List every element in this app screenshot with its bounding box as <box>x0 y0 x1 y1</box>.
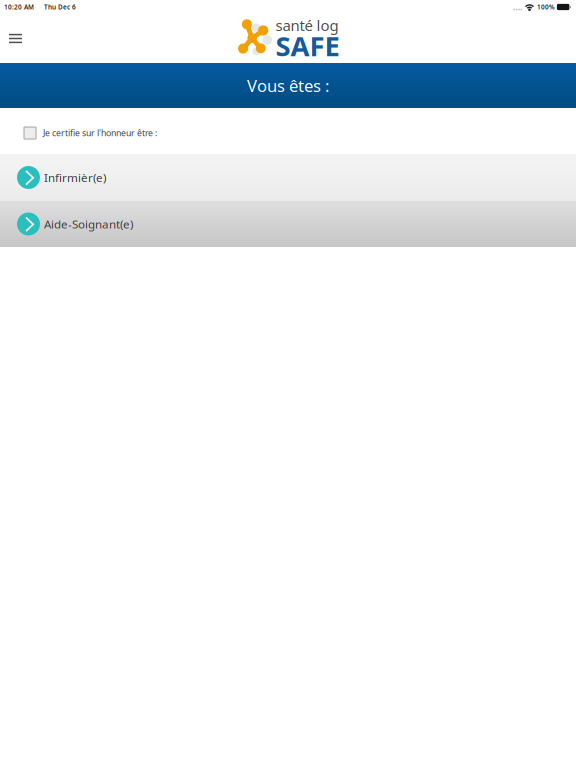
staticText: SAFE <box>275 27 339 64</box>
staticText: Infirmièr(e) <box>44 170 106 185</box>
staticText: Aide-Soignant(e) <box>44 216 133 232</box>
staticText: Je certifie sur l'honneur être : <box>43 127 157 139</box>
button[interactable]: Infirmièr(e) <box>0 154 576 201</box>
staticText: Vous êtes : <box>247 74 329 97</box>
staticText: 100% <box>537 3 555 11</box>
button[interactable]: Je certifie sur l'honneur être <box>24 127 36 139</box>
button[interactable]: Menu <box>0 22 33 55</box>
staticText: 10:20 AM <box>4 3 34 11</box>
staticText: Thu Dec 6 <box>44 3 76 11</box>
button[interactable]: Aide-Soignant(e) <box>0 201 576 247</box>
staticText: santé log <box>275 15 338 35</box>
